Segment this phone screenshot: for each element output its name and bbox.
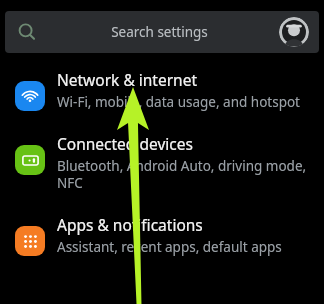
staticText: Bluetooth, Android Auto, driving mode, N… [57, 157, 312, 192]
button[interactable]: Account [279, 17, 309, 47]
staticText: Network & internet [57, 69, 197, 90]
button[interactable]: Network & internet [0, 69, 324, 111]
button[interactable]: Apps & notifications [0, 214, 324, 256]
button[interactable]: Connected devices [0, 133, 324, 192]
staticText: Wi-Fi, mobile, data usage, and hotspot [57, 93, 300, 111]
staticText: Assistant, recent apps, default apps [57, 238, 282, 256]
button[interactable]: Search [5, 11, 319, 53]
other: Search [15, 20, 39, 44]
staticText: Apps & notifications [57, 214, 203, 235]
staticText: Connected devices [57, 133, 193, 154]
staticText: Search settings [111, 23, 208, 41]
